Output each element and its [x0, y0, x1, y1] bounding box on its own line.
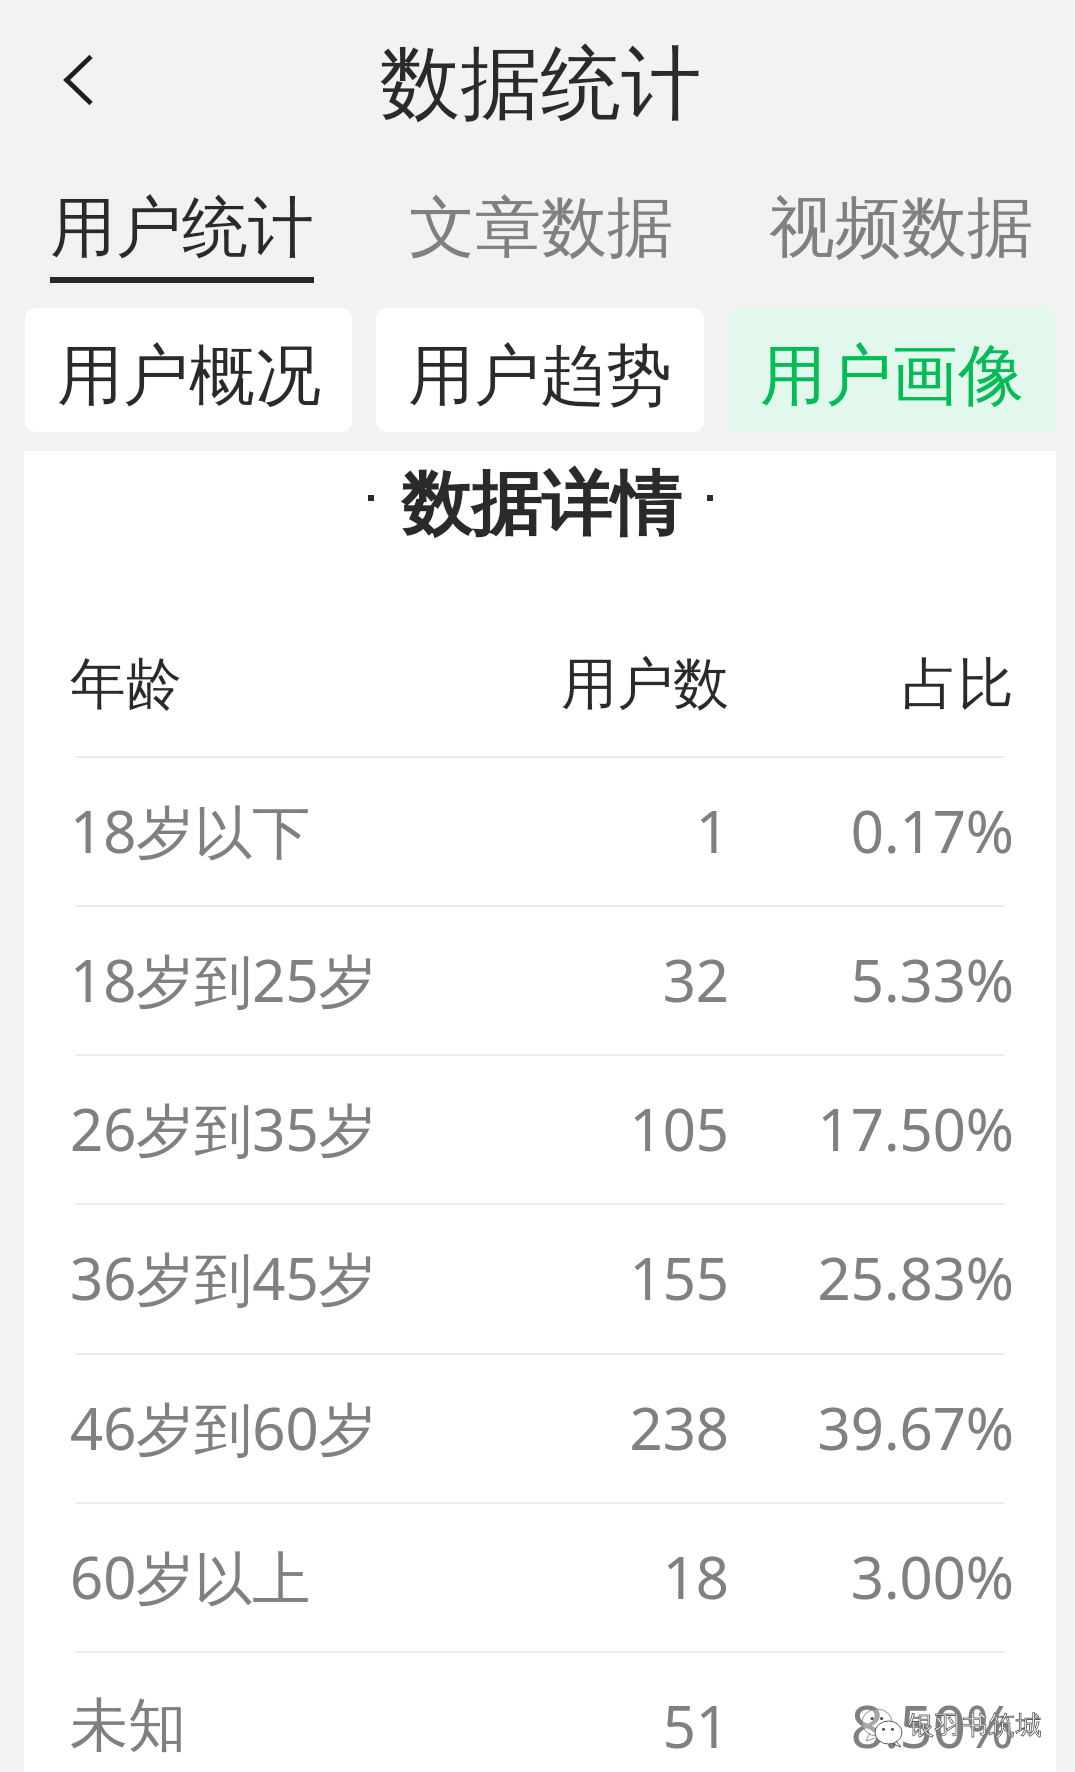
staticText: 18岁以下	[70, 791, 445, 870]
staticText: 18岁到25岁	[70, 940, 445, 1019]
button[interactable]: 用户概况	[25, 308, 352, 432]
staticText: 1	[445, 791, 729, 870]
staticText: 155	[445, 1238, 729, 1317]
button[interactable]: Back	[32, 34, 124, 126]
button[interactable]: 文章数据	[361, 186, 721, 298]
staticText: 3.00%	[729, 1537, 1014, 1616]
staticText: 105	[445, 1089, 729, 1168]
staticText: 数据统计	[3, 33, 1075, 134]
staticText: 0.17%	[729, 791, 1014, 870]
staticText: 数据详情	[401, 461, 681, 549]
staticText: 用户数	[445, 649, 729, 720]
staticText: 用户趋势	[408, 334, 672, 417]
staticText: 8.50%	[729, 1686, 1014, 1765]
staticText: 18	[445, 1537, 729, 1616]
staticText: 用户概况	[57, 334, 321, 417]
staticText: 占比	[729, 649, 1014, 720]
button[interactable]: 用户画像	[728, 308, 1056, 432]
staticText: 25.83%	[729, 1238, 1014, 1317]
staticText: 36岁到45岁	[70, 1238, 445, 1317]
button[interactable]: 视频数据	[721, 186, 1075, 298]
staticText: 用户画像	[760, 334, 1024, 417]
staticText: 银羽书筑城	[908, 1709, 1043, 1742]
staticText: 银羽书筑城	[908, 1709, 1043, 1742]
staticText: 26岁到35岁	[70, 1089, 445, 1168]
staticText: 年龄	[70, 649, 445, 720]
staticText: 60岁以上	[70, 1537, 445, 1616]
staticText: 39.67%	[729, 1388, 1014, 1467]
staticText: 用户统计	[50, 186, 314, 269]
staticText: 238	[445, 1388, 729, 1467]
staticText: 51	[445, 1686, 729, 1765]
staticText: 17.50%	[729, 1089, 1014, 1168]
button[interactable]: 用户趋势	[376, 308, 704, 432]
staticText: 32	[445, 940, 729, 1019]
button[interactable]: 用户统计	[2, 186, 361, 298]
staticText: 46岁到60岁	[70, 1388, 445, 1467]
staticText: 文章数据	[409, 186, 673, 269]
staticText: 未知	[70, 1689, 445, 1762]
staticText: 视频数据	[769, 186, 1033, 269]
staticText: 5.33%	[729, 940, 1014, 1019]
